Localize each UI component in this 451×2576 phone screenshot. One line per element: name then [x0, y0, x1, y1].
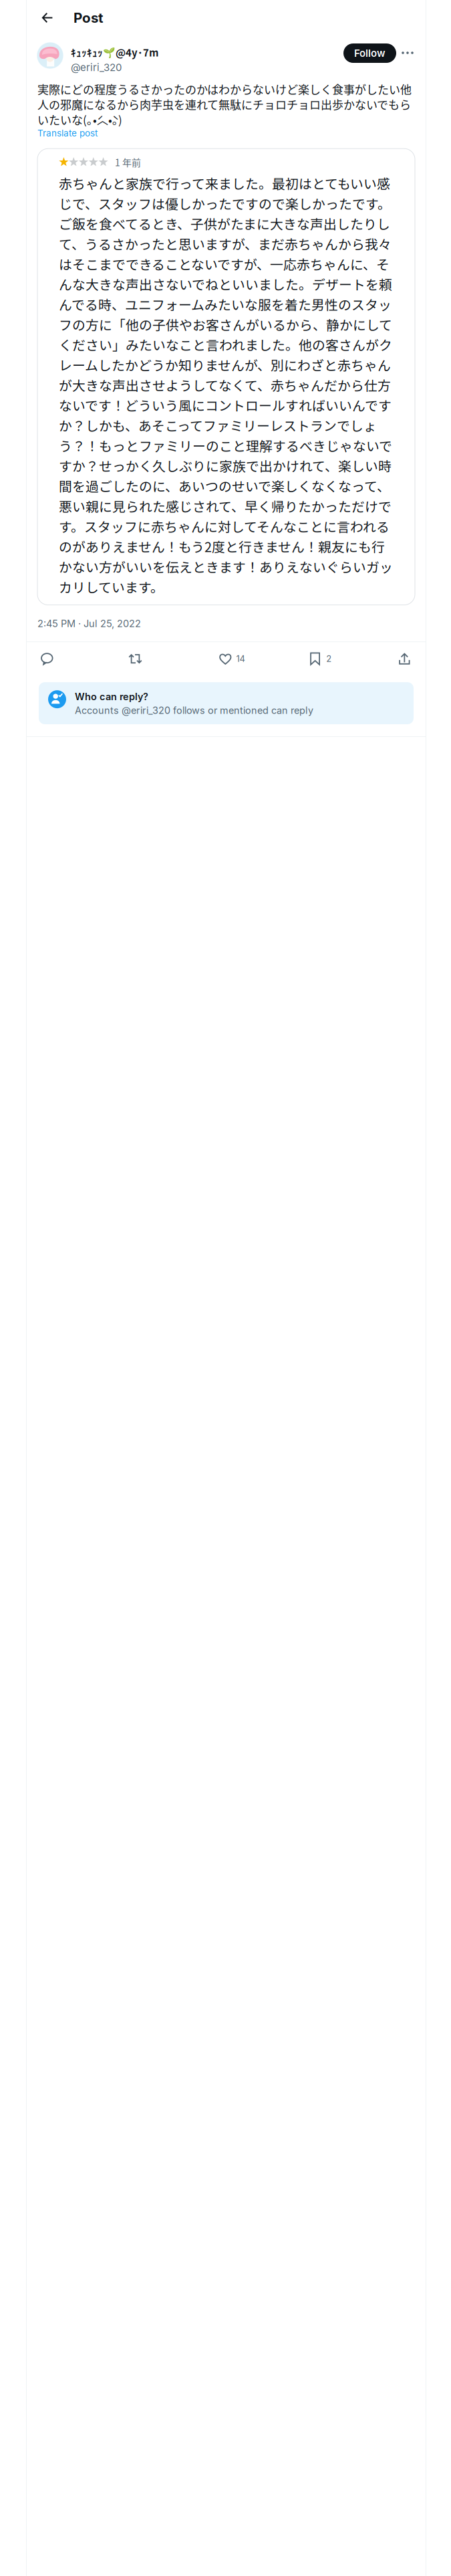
- button[interactable]: 1 年前: [37, 149, 415, 605]
- staticText: Translate post: [37, 128, 98, 139]
- button[interactable]: Like, 14: [219, 647, 310, 671]
- button[interactable]: Back: [37, 7, 58, 28]
- button[interactable]: Repost: [128, 647, 219, 671]
- staticText: 赤ちゃんと家族で行って来ました。最初はとてもいい感じで、スタッフは優しかったです…: [59, 174, 393, 596]
- staticText: 2: [326, 654, 332, 664]
- staticText: @eriri_320: [71, 61, 122, 73]
- staticText: 実際にどの程度うるさかったのかはわからないけど楽しく食事がしたい他人の邪魔になる…: [37, 81, 412, 128]
- staticText: Post: [73, 9, 104, 26]
- staticText: 14: [236, 654, 245, 664]
- button[interactable]: More: [399, 44, 416, 62]
- button[interactable]: Bookmark, 2: [310, 647, 399, 671]
- button[interactable]: Profile photo: [37, 42, 63, 69]
- staticText: Accounts @eriri_320 follows or mentioned…: [75, 705, 313, 716]
- staticText: Follow: [354, 47, 386, 59]
- button[interactable]: Follow: [343, 43, 396, 63]
- button[interactable]: Share: [399, 647, 426, 671]
- staticText: Who can reply?: [75, 691, 148, 703]
- button[interactable]: Translate post: [37, 128, 98, 140]
- staticText: 1 年前: [115, 155, 141, 169]
- staticText: 2:45 PM · Jul 25, 2022: [37, 618, 141, 629]
- button[interactable]: Reply: [41, 647, 128, 671]
- staticText: ｷｭｯｷｭｯ🌱@4y･7m: [71, 45, 158, 59]
